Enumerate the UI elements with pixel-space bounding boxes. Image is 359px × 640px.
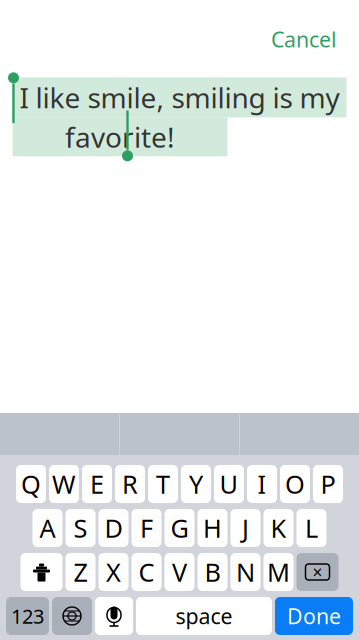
staticText: O bbox=[285, 467, 305, 501]
staticText: favorite! bbox=[65, 118, 175, 155]
button[interactable]: Delete bbox=[296, 553, 338, 591]
staticText: space bbox=[175, 602, 232, 630]
button[interactable]: Y bbox=[181, 465, 211, 503]
button[interactable]: Shift bbox=[20, 553, 62, 591]
button[interactable]: I bbox=[247, 465, 277, 503]
button[interactable]: V bbox=[164, 553, 194, 591]
staticText: C bbox=[138, 555, 154, 589]
button[interactable]: Done bbox=[275, 597, 353, 635]
button[interactable]: J bbox=[230, 509, 260, 547]
staticText: Z bbox=[73, 555, 87, 589]
staticText: X bbox=[106, 555, 121, 589]
button[interactable]: U bbox=[214, 465, 244, 503]
button[interactable]: W bbox=[49, 465, 79, 503]
button[interactable]: H bbox=[197, 509, 227, 547]
staticText: R bbox=[122, 467, 138, 501]
staticText: Y bbox=[189, 467, 203, 501]
staticText: J bbox=[242, 511, 249, 545]
staticText: F bbox=[140, 511, 153, 545]
staticText: E bbox=[90, 467, 104, 501]
button[interactable]: O bbox=[280, 465, 310, 503]
staticText: G bbox=[170, 511, 188, 545]
button[interactable]: E bbox=[82, 465, 112, 503]
staticText: S bbox=[73, 511, 87, 545]
button[interactable]: C bbox=[131, 553, 161, 591]
staticText: Cancel bbox=[271, 25, 337, 53]
staticText: 123 bbox=[11, 603, 44, 629]
button[interactable]: M bbox=[263, 553, 293, 591]
button[interactable]: N bbox=[230, 553, 260, 591]
button[interactable]: T bbox=[148, 465, 178, 503]
button[interactable]: Q bbox=[16, 465, 46, 503]
button[interactable]: K bbox=[263, 509, 293, 547]
button[interactable]: F bbox=[131, 509, 161, 547]
button[interactable]: 123 bbox=[6, 597, 49, 635]
staticText: B bbox=[204, 555, 220, 589]
staticText: I like smile, smiling is my bbox=[19, 79, 339, 116]
button[interactable]: X bbox=[98, 553, 128, 591]
button[interactable]: B bbox=[197, 553, 227, 591]
staticText: A bbox=[39, 511, 55, 545]
staticText: P bbox=[320, 467, 335, 501]
staticText: Q bbox=[21, 467, 41, 501]
button[interactable]: Cancel bbox=[257, 17, 351, 61]
staticText: K bbox=[270, 511, 286, 545]
button[interactable]: S bbox=[65, 509, 95, 547]
button[interactable]: Z bbox=[65, 553, 95, 591]
staticText: V bbox=[172, 555, 187, 589]
staticText: D bbox=[104, 511, 122, 545]
staticText: H bbox=[203, 511, 222, 545]
staticText: U bbox=[219, 467, 238, 501]
staticText: I bbox=[257, 467, 266, 501]
button[interactable]: Dictation bbox=[95, 597, 133, 635]
staticText: Done bbox=[287, 602, 341, 630]
button[interactable]: G bbox=[164, 509, 194, 547]
button[interactable]: D bbox=[98, 509, 128, 547]
staticText: W bbox=[52, 467, 76, 501]
button[interactable]: R bbox=[115, 465, 145, 503]
staticText: N bbox=[236, 555, 255, 589]
button[interactable]: Next keyboard bbox=[52, 597, 92, 635]
staticText: L bbox=[305, 511, 318, 545]
button[interactable]: P bbox=[313, 465, 343, 503]
button[interactable]: L bbox=[296, 509, 326, 547]
button[interactable]: space bbox=[136, 597, 272, 635]
staticText: T bbox=[156, 467, 170, 501]
staticText: M bbox=[267, 555, 290, 589]
staticText: × bbox=[312, 560, 322, 583]
button[interactable]: A bbox=[32, 509, 62, 547]
